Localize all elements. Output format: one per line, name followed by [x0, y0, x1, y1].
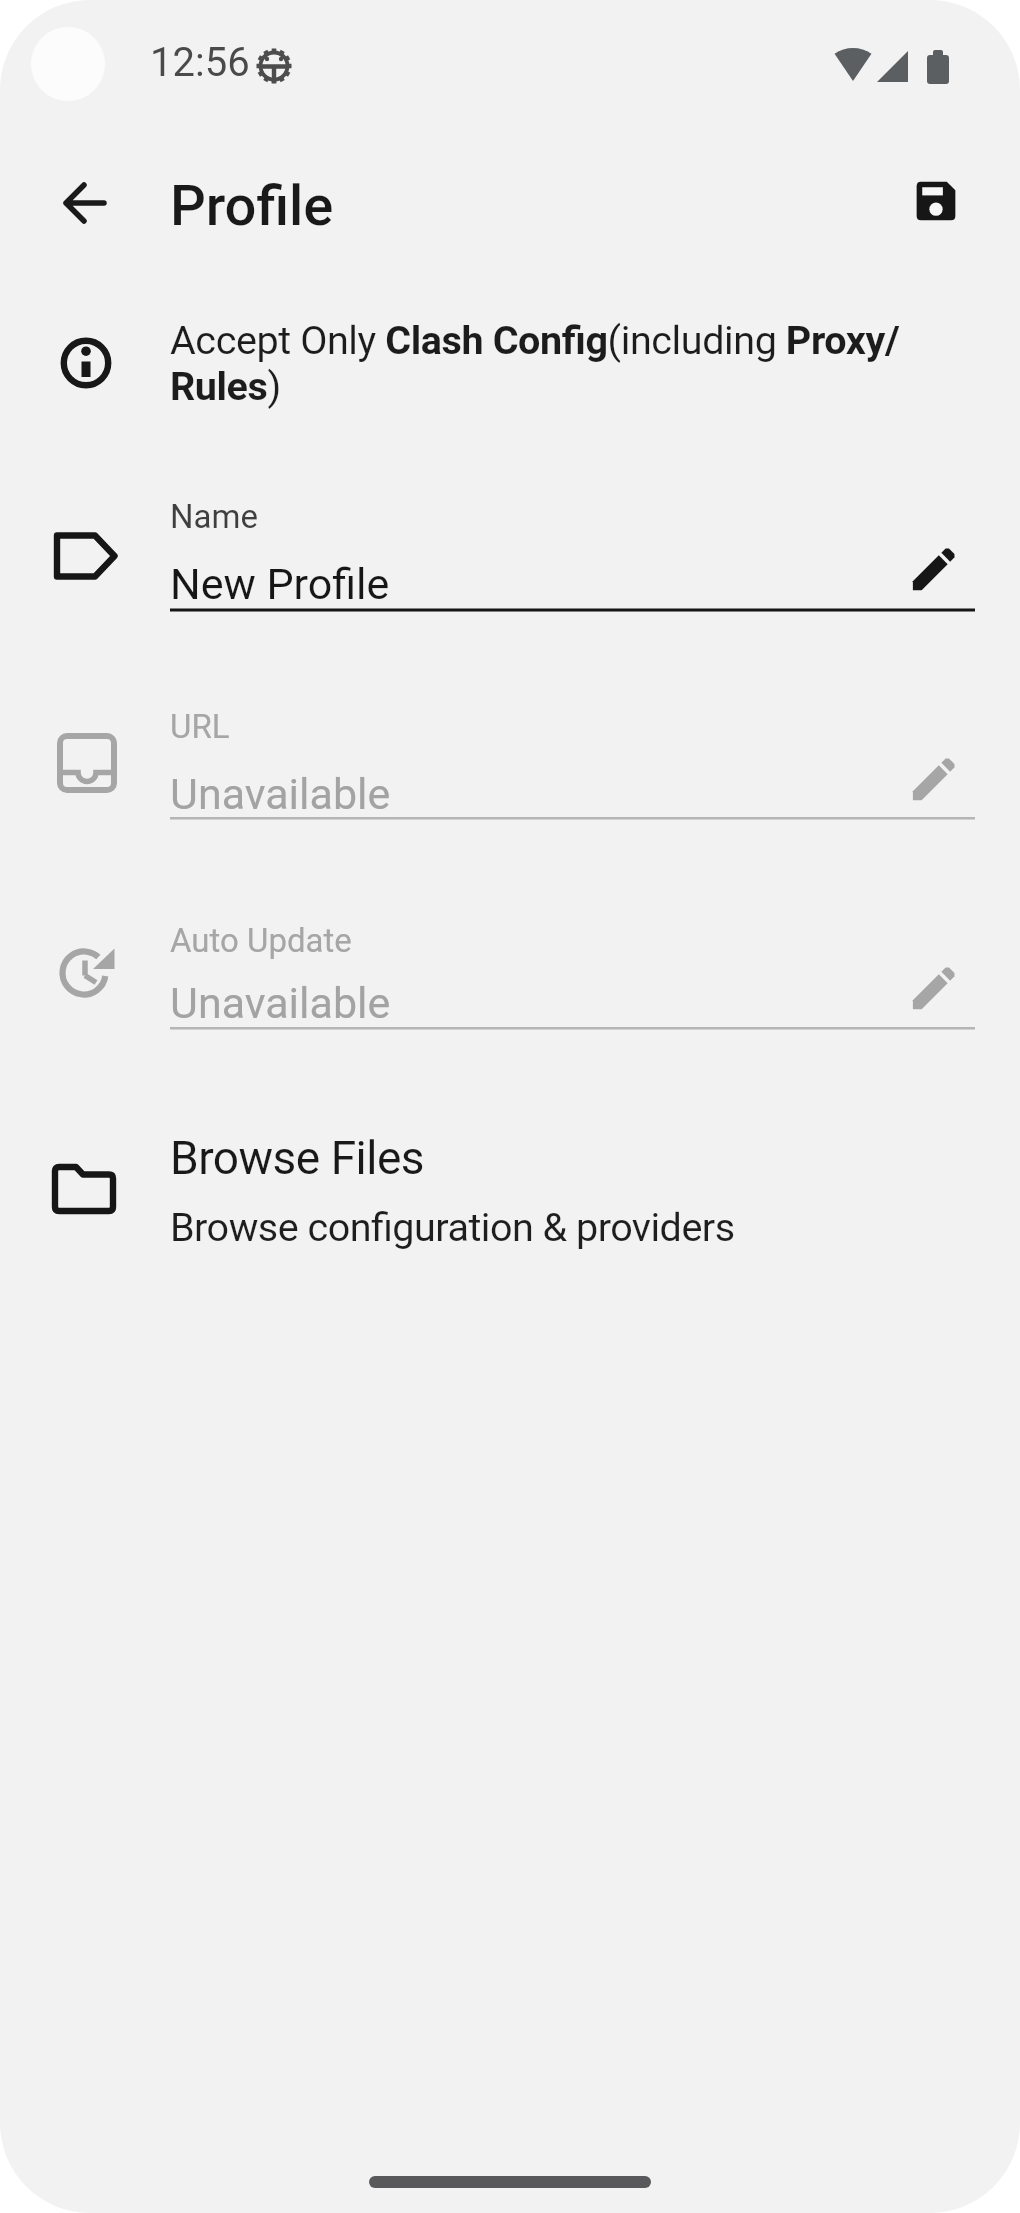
staticText: Profile [170, 173, 334, 239]
staticText: URL [170, 707, 230, 746]
staticText: Browse configuration & providers [170, 1204, 735, 1250]
staticText: Browse Files [170, 1131, 425, 1185]
staticText: 12:56 [150, 39, 250, 86]
staticText: Auto Update [170, 921, 352, 960]
staticText: Name [170, 497, 258, 536]
staticText: Unavailable [170, 978, 391, 1028]
staticText: Accept Only Clash Config(including Proxy… [170, 317, 982, 409]
staticText: New Profile [170, 559, 390, 609]
staticText: Unavailable [170, 769, 391, 819]
